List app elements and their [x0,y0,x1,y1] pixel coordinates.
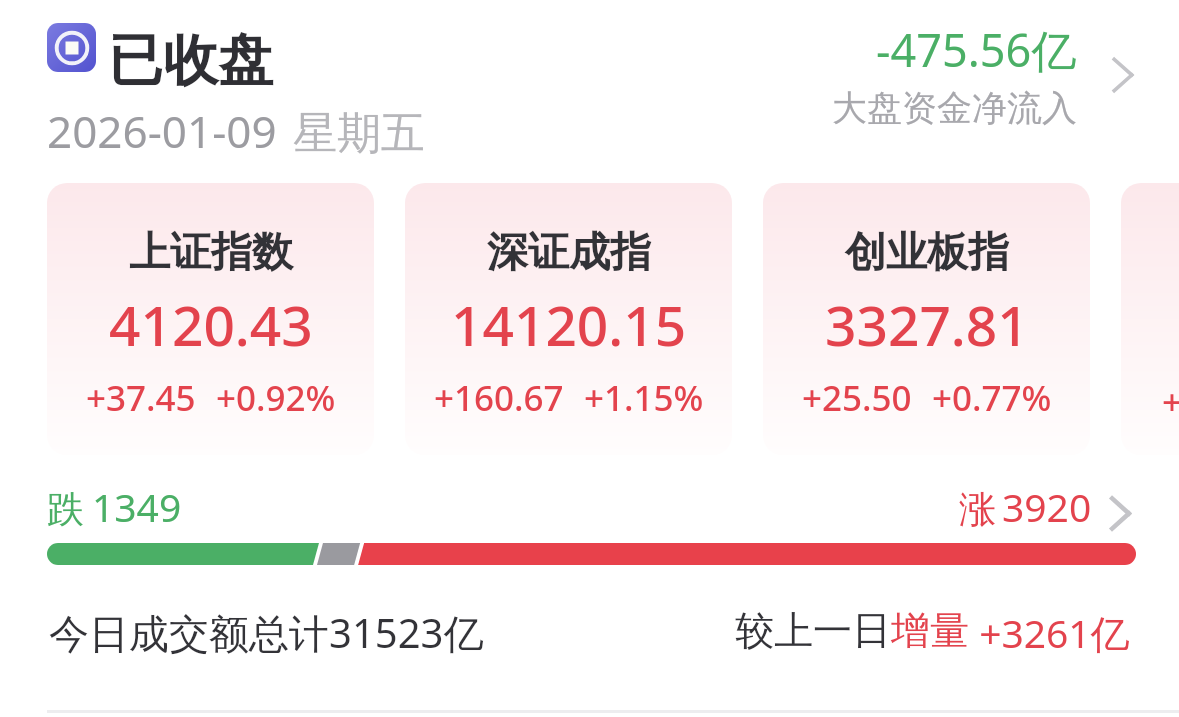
staticText: 深证成指 [487,227,651,279]
staticText: +0.77% [932,374,1052,422]
staticText: 14120.15 [451,287,687,362]
staticText: 3327.81 [825,287,1029,362]
button[interactable]: 上证指数 [47,183,374,455]
staticText: 3920 [1002,480,1092,533]
staticText: +160.67 [434,374,564,422]
staticText: 跌 [47,486,84,533]
staticText: 4120.43 [109,287,313,362]
button[interactable]: 深证成指 [405,183,732,455]
button[interactable]: Market status [47,23,96,72]
button[interactable]: Capital flow details [832,19,1133,130]
staticText: 2026-01-09 [47,101,277,161]
staticText: 已收盘 [108,26,273,95]
staticText: +3261亿 [969,606,1130,659]
staticText: -475.56亿 [876,19,1077,80]
staticText: +25.50 [802,374,912,422]
staticText: +1.15% [584,374,704,422]
staticText: 较上一日 [735,606,891,655]
staticText: 1349 [92,480,182,533]
staticText: 增量 [891,606,969,655]
button[interactable]: 涨 [959,480,1131,533]
button[interactable]: 创业板指 [763,183,1090,455]
staticText: 涨 [959,486,996,533]
staticText: 创业板指 [845,227,1009,279]
staticText: +37.45 [86,374,196,422]
staticText: +0.92% [216,374,336,422]
staticText: +9.26 [1162,378,1179,426]
staticText: 上证指数 [129,227,293,279]
button[interactable]: 跌 [47,480,182,533]
staticText: 今日成交额总计31523亿 [49,605,484,660]
staticText: 大盘资金净流入 [832,86,1077,130]
other: Rise and fall details [1109,493,1131,533]
button[interactable]: 科创50 [1121,183,1179,455]
staticText: 星期五 [293,106,425,161]
